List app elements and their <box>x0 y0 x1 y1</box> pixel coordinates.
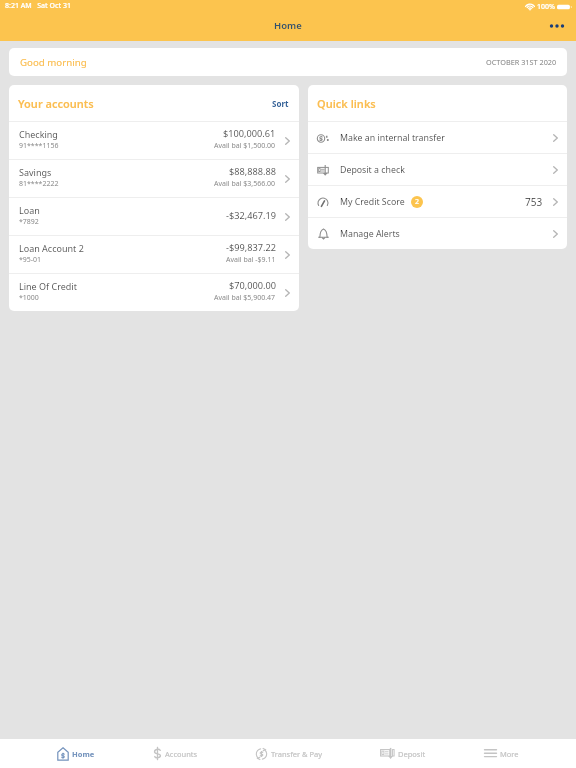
staticText: $100,000.61 <box>223 127 276 140</box>
button[interactable]: My Credit Score <box>308 186 567 217</box>
staticText: *1000 <box>19 293 39 303</box>
staticText: Home <box>72 749 95 759</box>
button[interactable]: Checking <box>9 122 299 159</box>
staticText: Quick links <box>317 96 376 111</box>
staticText: OCTOBER 31ST 2020 <box>486 57 557 67</box>
button[interactable]: Loan Account 2 <box>9 236 299 273</box>
button[interactable]: Home <box>57 739 95 768</box>
staticText: *7892 <box>19 217 39 227</box>
staticText: Your accounts <box>18 96 94 111</box>
staticText: Transfer & Pay <box>271 749 323 759</box>
button[interactable]: More <box>484 739 519 768</box>
staticText: Good morning <box>20 56 87 69</box>
button[interactable]: Line Of Credit <box>9 274 299 311</box>
staticText: Loan <box>19 204 40 216</box>
staticText: Manage Alerts <box>340 228 400 240</box>
staticText: Home <box>274 19 302 32</box>
staticText: 753 <box>525 195 543 209</box>
button[interactable]: Deposit <box>380 739 426 768</box>
staticText: Line Of Credit <box>19 280 77 292</box>
staticText: Savings <box>19 166 52 178</box>
staticText: Avail bal $3,566.00 <box>214 179 276 189</box>
staticText: Loan Account 2 <box>19 242 84 254</box>
button[interactable]: Accounts <box>153 739 198 768</box>
button[interactable]: Sort <box>262 85 299 121</box>
button[interactable]: Deposit a check <box>308 154 567 185</box>
staticText: Avail bal $1,500.00 <box>214 141 276 151</box>
staticText: Deposit a check <box>340 164 405 176</box>
staticText: More <box>500 749 519 759</box>
staticText: -$99,837.22 <box>226 241 276 254</box>
staticText: Checking <box>19 128 58 140</box>
staticText: 8:21 AM Sat Oct 31 <box>5 1 71 11</box>
staticText: -$32,467.19 <box>226 209 276 222</box>
staticText: *95-01 <box>19 255 42 265</box>
staticText: Deposit <box>398 749 426 759</box>
staticText: $70,000.00 <box>229 279 276 292</box>
staticText: 100% <box>537 2 555 12</box>
staticText: $88,888.88 <box>229 165 276 178</box>
button[interactable]: Loan <box>9 198 299 235</box>
staticText: 91****1156 <box>19 141 59 151</box>
staticText: Sort <box>272 98 289 109</box>
staticText: Avail bal -$9.11 <box>226 255 276 265</box>
button[interactable]: Transfer & Pay <box>255 739 323 768</box>
staticText: Avail bal $5,900.47 <box>214 293 276 303</box>
button[interactable]: Savings <box>9 160 299 197</box>
staticText: My Credit Score <box>340 196 405 208</box>
button[interactable]: Good morning <box>9 48 567 76</box>
staticText: 2 <box>415 197 420 207</box>
button[interactable]: Make an internal transfer <box>308 122 567 153</box>
staticText: Accounts <box>165 749 198 759</box>
staticText: 81****2222 <box>19 179 59 189</box>
button[interactable]: Manage Alerts <box>308 218 567 249</box>
staticText: Make an internal transfer <box>340 132 445 144</box>
button[interactable]: More options <box>544 13 570 39</box>
